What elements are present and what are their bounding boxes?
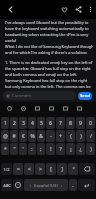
button[interactable]: -: [46, 130, 55, 142]
button[interactable]: Keyboard tool 2: [16, 102, 30, 115]
staticText: 1: [4, 120, 7, 127]
button[interactable]: Backspace: [79, 163, 95, 175]
button[interactable]: +: [56, 130, 65, 142]
staticText: #: [12, 133, 16, 140]
staticText: :: [31, 146, 33, 153]
staticText: ): [80, 133, 82, 140]
staticText: !: [50, 146, 52, 153]
button[interactable]: Keyboard tool 3: [30, 102, 44, 115]
button[interactable]: 1/2: [1, 163, 12, 175]
button[interactable]: 6: [46, 117, 55, 129]
button[interactable]: Keyboard tool 5: [58, 102, 72, 115]
staticText: 1. There is no dedicated emoji key on th…: [5, 60, 93, 89]
staticText: ": [13, 146, 16, 153]
staticText: 0: [89, 120, 92, 127]
staticText: >: [39, 166, 42, 173]
staticText: <: [28, 166, 31, 173]
staticText: /: [90, 133, 92, 140]
staticText: ?: [59, 146, 62, 153]
button[interactable]: [: [46, 163, 56, 175]
staticText: @: [3, 133, 8, 140]
button[interactable]: Share: [71, 0, 85, 19]
staticText: 5: [40, 120, 43, 127]
button[interactable]: ": [10, 143, 18, 155]
button[interactable]: 0: [86, 117, 95, 129]
button[interactable]: >: [35, 163, 45, 175]
button[interactable]: ;: [37, 143, 45, 155]
button[interactable]: #: [10, 130, 18, 142]
button[interactable]: 4: [28, 117, 36, 129]
staticText: 3: [22, 120, 25, 127]
button[interactable]: 7: [56, 117, 65, 129]
staticText: 4: [31, 120, 34, 127]
staticText: I've always used Gboard but the possibil…: [5, 20, 93, 55]
button[interactable]: :: [28, 143, 36, 155]
button[interactable]: Keyboard tool 6: [72, 102, 86, 115]
button[interactable]: (: [66, 130, 75, 142]
button[interactable]: 1: [1, 117, 9, 129]
staticText: ABC: [3, 183, 11, 188]
button[interactable]: /: [86, 130, 95, 142]
button[interactable]: ¡: [66, 143, 75, 155]
staticText: (: [70, 133, 72, 140]
staticText: 9: [79, 120, 82, 127]
staticText: ‹ Español (US) ›: [30, 183, 63, 188]
button[interactable]: ]: [57, 163, 67, 175]
button[interactable]: Keyboard tool 4: [44, 102, 58, 115]
button[interactable]: &: [37, 130, 45, 142]
staticText: *: [4, 146, 7, 153]
button[interactable]: Keyboard tool 1: [2, 102, 16, 115]
staticText: [: [50, 166, 52, 173]
button[interactable]: €: [19, 130, 27, 142]
button[interactable]: 8: [66, 117, 75, 129]
button[interactable]: Comment: [6, 91, 76, 100]
button[interactable]: ‹ Español (US) ›: [24, 179, 68, 191]
staticText: Comment: [12, 93, 32, 99]
staticText: 7: [59, 120, 62, 127]
staticText: °: [72, 166, 75, 173]
button[interactable]: Emoji: [13, 179, 23, 191]
staticText: ¿: [79, 146, 82, 153]
staticText: %: [30, 133, 35, 140]
button[interactable]: ): [76, 130, 85, 142]
staticText: .: [72, 182, 74, 189]
staticText: 1/2: [3, 167, 10, 172]
staticText: ¡: [70, 146, 72, 153]
staticText: +: [59, 133, 62, 140]
button[interactable]: 3: [19, 117, 27, 129]
staticText: 6: [49, 120, 52, 127]
staticText: ]: [61, 166, 63, 173]
staticText: ;: [40, 146, 42, 153]
button[interactable]: ¿: [76, 143, 85, 155]
staticText: ': [22, 146, 24, 153]
button[interactable]: 9: [76, 117, 85, 129]
button[interactable]: !: [46, 143, 55, 155]
staticText: 8: [69, 120, 72, 127]
button[interactable]: 5: [37, 117, 45, 129]
button[interactable]: ?: [56, 143, 65, 155]
button[interactable]: ': [19, 143, 27, 155]
button[interactable]: =: [13, 163, 23, 175]
button[interactable]: Send: [78, 92, 92, 100]
staticText: Send: [80, 93, 90, 99]
button[interactable]: Enter: [78, 179, 95, 191]
staticText: =: [17, 166, 20, 173]
button[interactable]: Back: [0, 0, 20, 19]
staticText: &: [39, 133, 43, 140]
staticText: -: [50, 133, 52, 140]
button[interactable]: ): [86, 143, 95, 155]
button[interactable]: More options: [85, 0, 96, 19]
button[interactable]: Favorite: [58, 0, 71, 19]
button[interactable]: *: [1, 143, 9, 155]
staticText: €: [22, 133, 25, 140]
button[interactable]: 2: [10, 117, 18, 129]
button[interactable]: ABC: [1, 179, 12, 191]
button[interactable]: <: [24, 163, 34, 175]
staticText: 2: [13, 120, 16, 127]
button[interactable]: %: [28, 130, 36, 142]
button[interactable]: @: [1, 130, 9, 142]
staticText: ): [90, 146, 92, 153]
button[interactable]: °: [68, 163, 78, 175]
button[interactable]: .: [69, 179, 77, 191]
